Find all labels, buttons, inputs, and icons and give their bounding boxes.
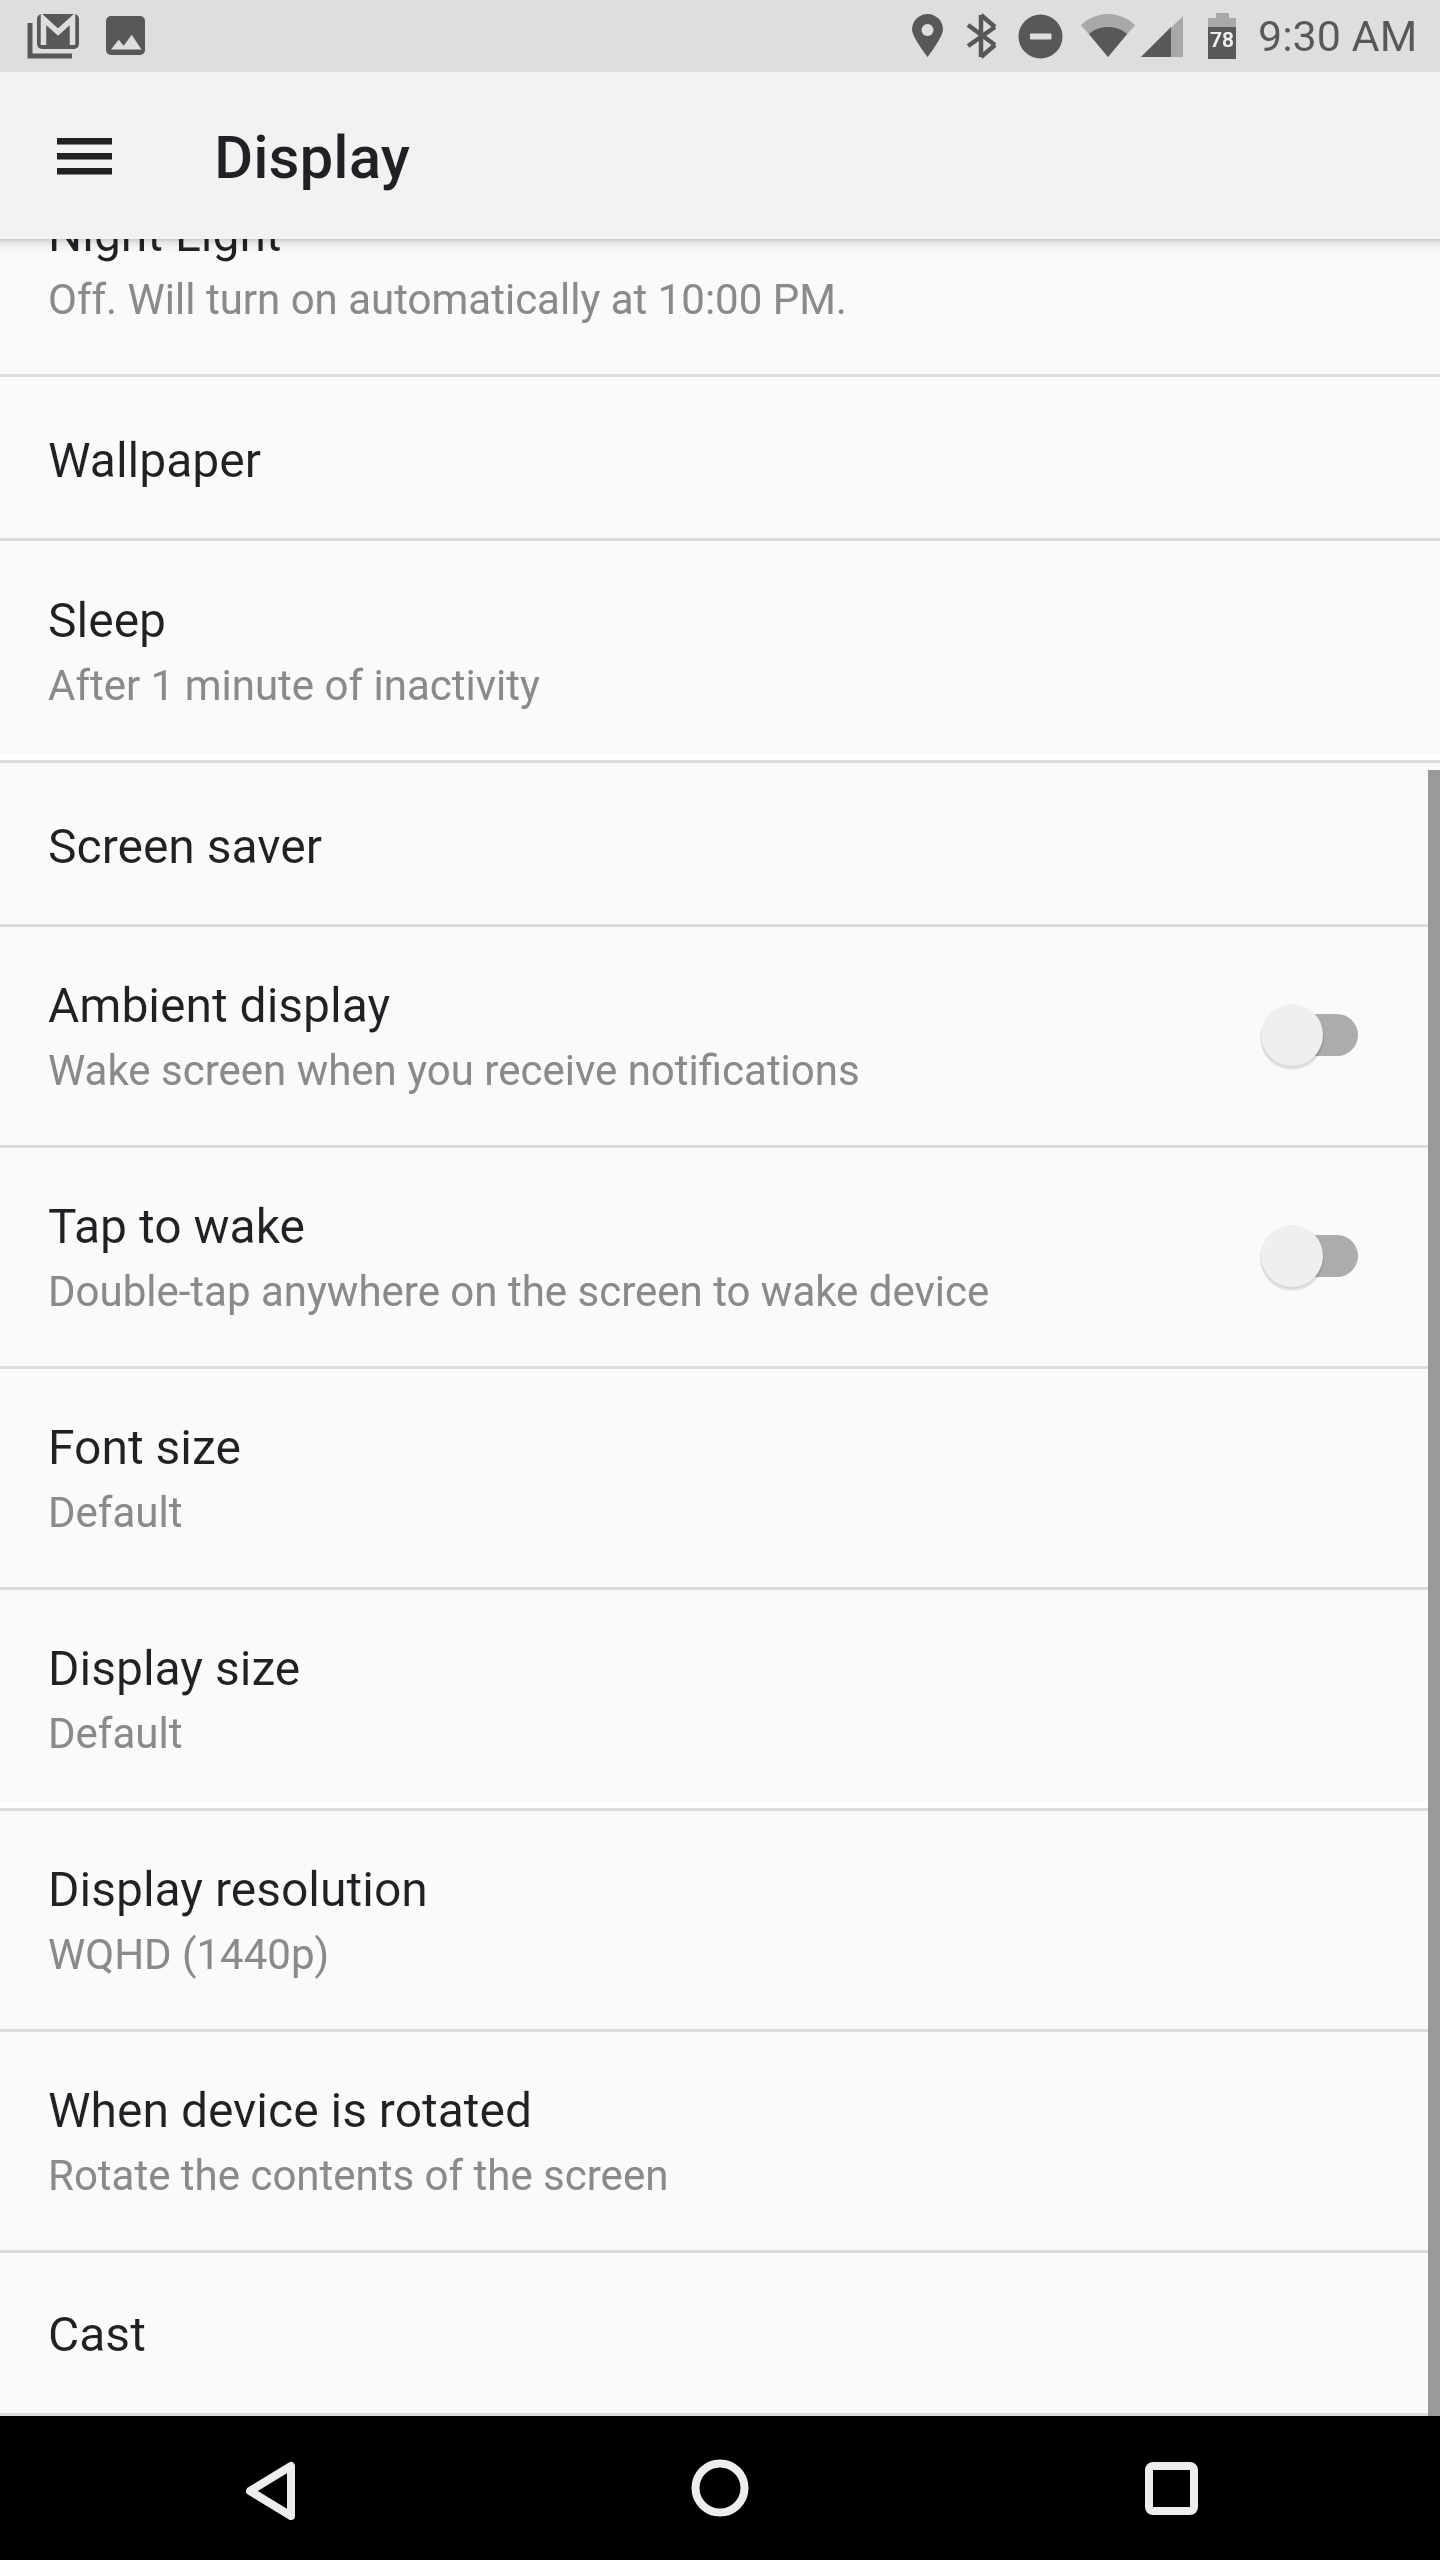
button[interactable]: Display size bbox=[0, 1590, 1440, 1802]
staticText: Cast bbox=[48, 2306, 146, 2362]
button[interactable]: Sleep bbox=[0, 541, 1440, 754]
staticText: When device is rotated bbox=[48, 2082, 533, 2138]
staticText: Display resolution bbox=[48, 1861, 428, 1917]
staticText: Wake screen when you receive notificatio… bbox=[48, 1046, 860, 1095]
staticText: Off. Will turn on automatically at 10:00… bbox=[48, 275, 847, 324]
button[interactable]: Recent apps bbox=[1110, 2428, 1230, 2548]
staticText: Wallpaper bbox=[48, 432, 261, 488]
staticText: Font size bbox=[48, 1419, 241, 1475]
staticText: Sleep bbox=[48, 592, 167, 648]
staticText: Screen saver bbox=[48, 818, 322, 874]
button[interactable]: Back bbox=[211, 2428, 331, 2548]
button[interactable]: Wallpaper bbox=[0, 377, 1440, 538]
staticText: Default bbox=[48, 1488, 183, 1537]
button[interactable]: When device is rotated bbox=[0, 2032, 1440, 2250]
button[interactable]: Cast bbox=[0, 2253, 1440, 2410]
staticText: 78 bbox=[1208, 28, 1236, 53]
staticText: Display bbox=[214, 122, 410, 192]
staticText: After 1 minute of inactivity bbox=[48, 661, 540, 710]
button[interactable]: Screen saver bbox=[0, 763, 1440, 924]
staticText: 9:30 AM bbox=[1258, 11, 1418, 61]
staticText: Double-tap anywhere on the screen to wak… bbox=[48, 1267, 990, 1316]
button[interactable]: Font size bbox=[0, 1369, 1440, 1587]
staticText: Ambient display bbox=[48, 977, 391, 1033]
staticText: Night Light bbox=[48, 206, 282, 262]
staticText: Default bbox=[48, 1709, 183, 1758]
staticText: Rotate the contents of the screen bbox=[48, 2151, 669, 2200]
button[interactable]: Display resolution bbox=[0, 1811, 1440, 2029]
staticText: WQHD (1440p) bbox=[48, 1930, 330, 1979]
button[interactable]: Night Light bbox=[0, 155, 1440, 374]
button[interactable]: Tap to wake bbox=[0, 1148, 1440, 1366]
button[interactable]: Open navigation menu bbox=[36, 84, 132, 180]
staticText: Tap to wake bbox=[48, 1198, 305, 1254]
button[interactable]: Home bbox=[660, 2428, 780, 2548]
staticText: Display size bbox=[48, 1640, 301, 1696]
button[interactable]: Ambient display bbox=[0, 927, 1440, 1145]
